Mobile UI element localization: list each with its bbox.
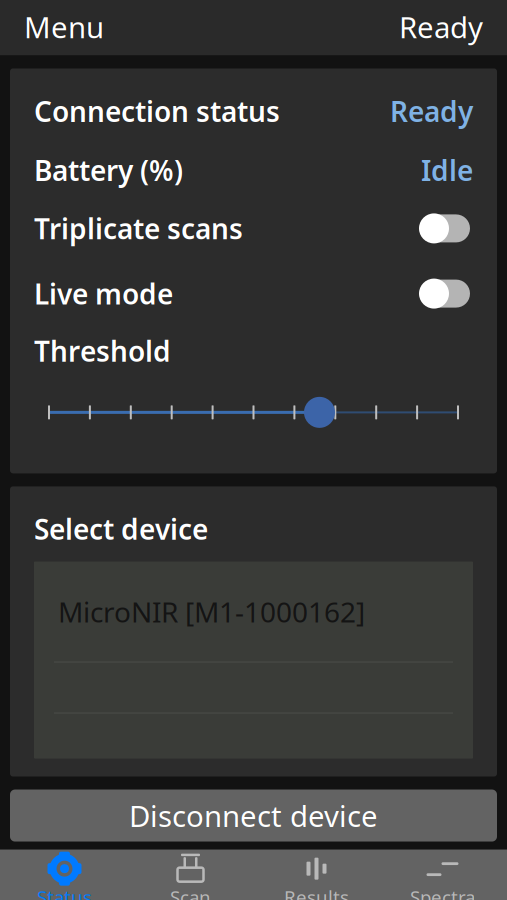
staticText: Results [284,885,349,900]
staticText: Connection status [34,92,280,130]
button[interactable]: Ready [375,0,507,56]
staticText: Ready [399,7,483,46]
staticText: Triplicate scans [34,210,243,247]
button[interactable]: Triplicate scans [417,211,473,245]
staticText: MicroNIR [M1-1000162] [58,593,365,630]
button[interactable]: Live mode [417,277,473,311]
button[interactable]: Results [253,849,379,900]
staticText: Ready [390,92,473,130]
staticText: Disconnect device [129,796,378,835]
button[interactable]: Scan [127,849,253,900]
staticText: Status [37,885,92,900]
staticText: Threshold [34,332,171,369]
button[interactable]: Spectra [379,849,505,900]
staticText: Spectra [410,885,475,900]
staticText: Live mode [34,275,173,312]
staticText: Idle [421,152,473,189]
button[interactable]: Status [1,849,127,900]
staticText: Select device [34,510,208,548]
staticText: Menu [24,7,104,46]
button[interactable]: MicroNIR [M1-1000162] [34,561,473,661]
button[interactable]: Disconnect device [10,789,497,841]
staticText: Scan [170,885,211,900]
button[interactable]: Menu [0,0,128,56]
staticText: Battery (%) [34,152,183,189]
